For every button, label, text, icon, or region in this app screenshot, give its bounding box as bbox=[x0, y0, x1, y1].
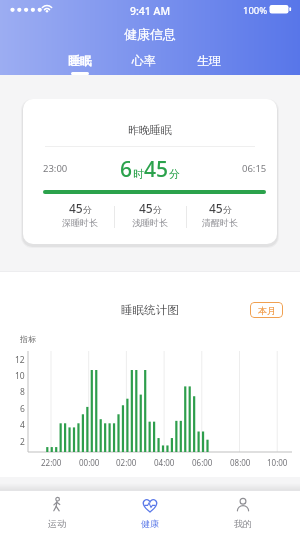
staticText: 分 bbox=[83, 204, 92, 215]
staticText: 健康 bbox=[141, 518, 159, 529]
staticText: 昨晚睡眠 bbox=[23, 123, 277, 137]
button[interactable]: 生理 bbox=[185, 50, 233, 70]
staticText: 时 bbox=[133, 167, 144, 181]
staticText: 08:00 bbox=[230, 457, 251, 467]
staticText: 9:41 AM bbox=[0, 4, 300, 18]
staticText: 指标 bbox=[20, 334, 36, 344]
staticText: 分 bbox=[223, 204, 232, 215]
staticText: 45 bbox=[69, 200, 83, 216]
staticText: 06:00 bbox=[192, 457, 213, 467]
button[interactable]: 健康 bbox=[115, 492, 185, 533]
staticText: 运动 bbox=[48, 518, 66, 529]
staticText: 睡眠统计图 bbox=[0, 303, 300, 317]
staticText: 23:00 bbox=[43, 162, 68, 175]
staticText: 本月 bbox=[258, 305, 276, 316]
staticText: 健康信息 bbox=[0, 26, 300, 42]
staticText: 清醒时长 bbox=[202, 217, 238, 228]
staticText: 06:15 bbox=[242, 162, 267, 175]
staticText: 2 bbox=[20, 436, 25, 446]
staticText: 4 bbox=[20, 419, 25, 429]
staticText: 6 bbox=[120, 155, 133, 184]
staticText: 我的 bbox=[234, 518, 252, 529]
staticText: 睡眠 bbox=[68, 53, 92, 68]
button[interactable]: 我的 bbox=[208, 492, 278, 533]
staticText: 22:00 bbox=[41, 457, 62, 467]
staticText: 45 bbox=[139, 200, 153, 216]
staticText: 45 bbox=[144, 155, 169, 184]
staticText: 02:00 bbox=[116, 457, 137, 467]
staticText: 12 bbox=[15, 354, 25, 364]
button[interactable]: 本月 bbox=[250, 302, 283, 318]
staticText: 深睡时长 bbox=[62, 217, 98, 228]
button[interactable]: 运动 bbox=[22, 492, 92, 533]
staticText: 6 bbox=[20, 403, 25, 413]
staticText: 分 bbox=[153, 204, 162, 215]
staticText: 00:00 bbox=[79, 457, 100, 467]
staticText: 生理 bbox=[197, 53, 221, 68]
staticText: 10 bbox=[15, 370, 25, 380]
staticText: 10:00 bbox=[267, 457, 288, 467]
staticText: 心率 bbox=[132, 53, 156, 68]
button[interactable]: 睡眠 bbox=[56, 50, 104, 70]
staticText: 04:00 bbox=[154, 457, 175, 467]
staticText: 100% bbox=[243, 4, 268, 17]
button[interactable]: 心率 bbox=[120, 50, 168, 70]
staticText: 8 bbox=[20, 386, 25, 396]
staticText: 45 bbox=[209, 200, 223, 216]
staticText: 浅睡时长 bbox=[132, 217, 168, 228]
staticText: 分 bbox=[169, 167, 180, 181]
